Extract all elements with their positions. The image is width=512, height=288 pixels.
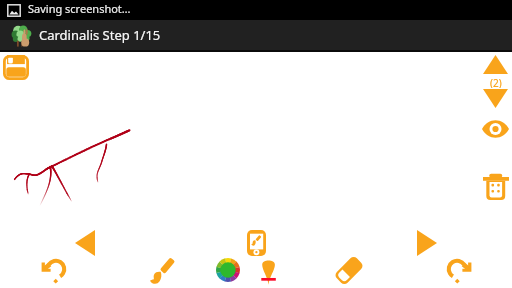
staticText: Saving screenshot… [28, 1, 131, 16]
button[interactable]: Next step [417, 230, 437, 256]
button[interactable]: Redo [445, 257, 472, 284]
button[interactable]: Eraser [337, 257, 361, 284]
button[interactable]: Colour [216, 258, 240, 282]
button[interactable]: Step down [483, 89, 508, 108]
button[interactable]: Brush [148, 257, 175, 285]
button[interactable]: Step up [483, 55, 508, 74]
staticText: (2) [490, 76, 502, 88]
button[interactable]: Delete [483, 173, 509, 200]
button[interactable]: Preview [482, 119, 509, 139]
button[interactable]: Undo [41, 257, 68, 284]
staticText: Cardinalis Step 1/15 [39, 26, 161, 44]
button[interactable]: Brush size [261, 258, 276, 285]
button[interactable]: Save [3, 55, 29, 80]
button[interactable]: Previous step [75, 230, 95, 256]
button[interactable]: Reference image [247, 230, 266, 256]
